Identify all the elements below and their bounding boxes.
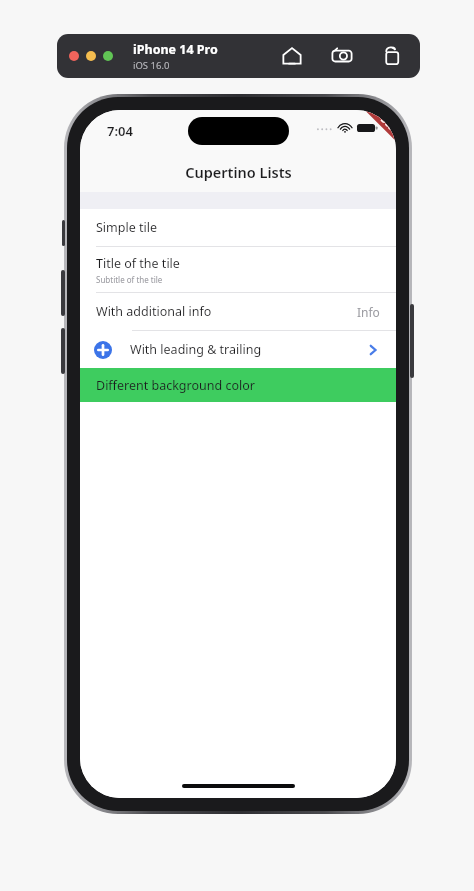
button[interactable]: Screenshot <box>330 44 354 68</box>
staticText: Subtitle of the tile <box>96 274 163 285</box>
staticText: DEBUG <box>379 114 396 141</box>
staticText: Title of the tile <box>96 255 180 272</box>
button[interactable]: Close <box>69 51 79 61</box>
staticText: iOS 16.0 <box>133 59 170 72</box>
button[interactable]: With leading & trailing <box>80 331 396 368</box>
staticText: With additional info <box>96 303 212 320</box>
staticText: With leading & trailing <box>130 341 262 358</box>
button[interactable]: Simple tile <box>80 209 396 246</box>
button[interactable]: Minimize <box>86 51 96 61</box>
button[interactable]: Different background color <box>80 368 396 402</box>
staticText: Simple tile <box>96 219 158 236</box>
button[interactable]: Home <box>280 44 304 68</box>
staticText: iPhone 14 Pro <box>133 41 218 58</box>
button[interactable]: Rotate <box>380 44 404 68</box>
staticText: Info <box>357 304 380 320</box>
button[interactable]: With additional info <box>80 293 396 330</box>
staticText: Cupertino Lists <box>185 162 292 182</box>
button[interactable]: Volume down <box>61 328 65 374</box>
button[interactable]: Silent switch <box>62 220 65 246</box>
staticText: Different background color <box>96 377 255 394</box>
button[interactable]: Power <box>410 304 414 378</box>
button[interactable]: Title of the tile <box>80 247 396 292</box>
button[interactable]: Volume up <box>61 270 65 316</box>
staticText: 7:04 <box>107 122 133 140</box>
button[interactable]: Maximize <box>103 51 113 61</box>
